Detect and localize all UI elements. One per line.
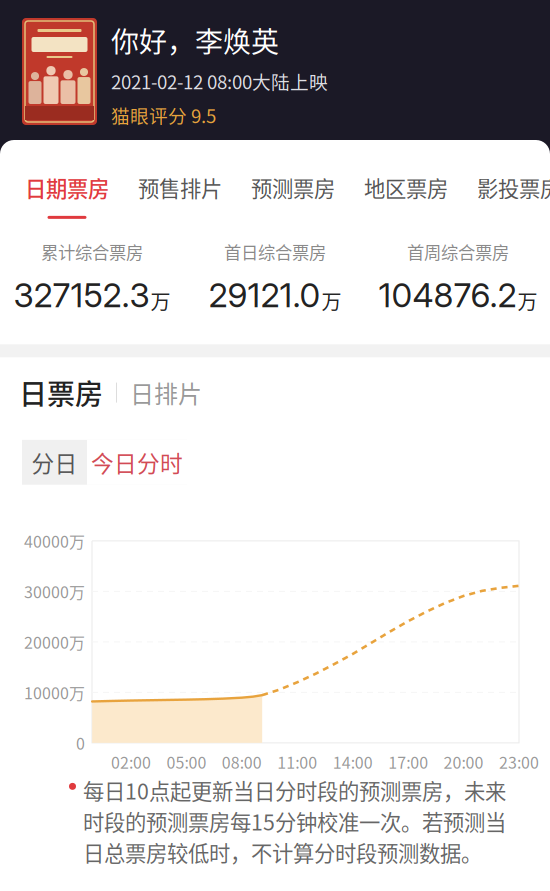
- staticText: 05:00: [166, 750, 206, 773]
- button[interactable]: 分日: [22, 440, 87, 485]
- staticText: 累计综合票房: [41, 239, 143, 264]
- staticText: 万: [321, 286, 341, 315]
- button[interactable]: 今日分时: [87, 440, 187, 485]
- staticText: 40000万: [24, 529, 85, 552]
- staticText: 首日综合票房: [224, 239, 326, 264]
- staticText: 日排片: [130, 375, 202, 410]
- staticText: 预售排片: [138, 172, 222, 203]
- staticText: 今日分时: [91, 446, 183, 479]
- staticText: 你好，李焕英: [111, 20, 279, 60]
- staticText: 30000万: [24, 580, 85, 603]
- staticText: 29121.0: [208, 275, 320, 315]
- button[interactable]: 预售排片: [138, 172, 222, 219]
- staticText: 猫眼评分 9.5: [111, 102, 216, 129]
- staticText: 日期票房: [25, 172, 109, 203]
- staticText: 万: [150, 286, 170, 315]
- staticText: 20000万: [24, 630, 85, 653]
- button[interactable]: 预测票房: [251, 172, 335, 219]
- staticText: 地区票房: [364, 172, 448, 203]
- staticText: 11:00: [277, 750, 317, 773]
- staticText: 每日10点起更新当日分时段的预测票房，未来时段的预测票房每15分钟校准一次。若预…: [83, 775, 506, 868]
- staticText: 10000万: [24, 681, 85, 704]
- staticText: 327152.3: [13, 275, 149, 315]
- staticText: 预测票房: [251, 172, 335, 203]
- button[interactable]: 日排片: [130, 375, 202, 410]
- staticText: 14:00: [333, 750, 373, 773]
- staticText: 首周综合票房: [407, 239, 509, 264]
- staticText: 20:00: [444, 750, 484, 773]
- staticText: 2021-02-12 08:00大陆上映: [111, 67, 328, 94]
- staticText: 23:00: [499, 750, 539, 773]
- staticText: 影投票房: [477, 172, 550, 203]
- staticText: 02:00: [111, 750, 151, 773]
- button[interactable]: 地区票房: [364, 172, 448, 219]
- staticText: 日票房: [19, 372, 103, 413]
- button[interactable]: 影投票房: [477, 172, 550, 219]
- staticText: 分日: [31, 446, 77, 479]
- staticText: 万: [517, 286, 537, 315]
- staticText: 17:00: [388, 750, 428, 773]
- button[interactable]: 日期票房: [25, 172, 109, 219]
- staticText: 104876.2: [378, 275, 516, 315]
- staticText: 08:00: [222, 750, 262, 773]
- staticText: 0: [76, 731, 85, 754]
